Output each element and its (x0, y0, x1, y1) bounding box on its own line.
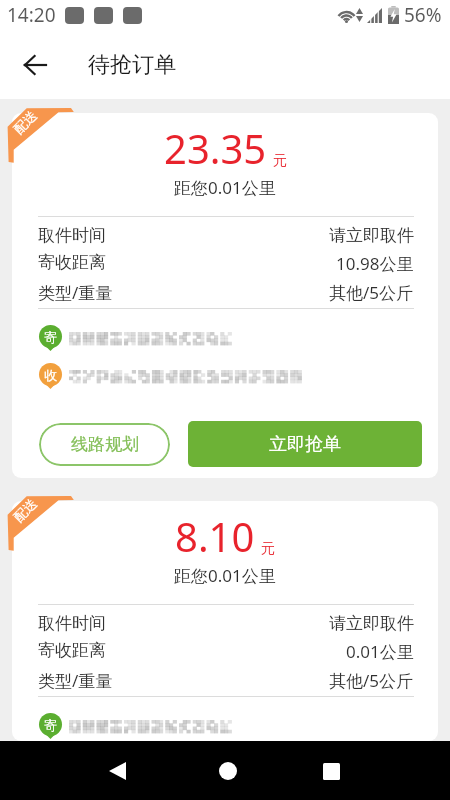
staticText: 寄收距离 (38, 252, 106, 273)
staticText: 配送 (10, 495, 40, 525)
staticText: 配送 (10, 107, 40, 137)
staticText: 距您0.01公里 (174, 564, 276, 587)
button[interactable]: 立即抢单 (188, 421, 422, 467)
staticText: 其他/5公斤 (329, 281, 414, 304)
staticText: 元 (261, 540, 275, 558)
button[interactable]: Back (0, 30, 70, 99)
button[interactable]: 23.35 (12, 113, 438, 478)
staticText: 取件时间 (38, 225, 106, 246)
staticText: 距您0.01公里 (174, 176, 276, 199)
staticText: 寄 (44, 717, 57, 733)
button[interactable]: 线路规划 (39, 423, 170, 466)
staticText: 取件时间 (38, 613, 106, 634)
button[interactable]: Back (91, 745, 143, 797)
staticText: 待抢订单 (88, 51, 176, 79)
staticText: 类型/重量 (38, 281, 113, 304)
staticText: 类型/重量 (38, 669, 113, 692)
staticText: 立即抢单 (269, 433, 341, 456)
button[interactable]: Recents (305, 745, 357, 797)
staticText: 23.35 (164, 121, 267, 175)
staticText: 线路规划 (71, 434, 139, 455)
staticText: 请立即取件 (329, 613, 414, 634)
staticText: 10.98公里 (336, 252, 414, 275)
staticText: 0.01公里 (346, 640, 414, 663)
staticText: 寄 (44, 329, 57, 345)
staticText: 56% (404, 2, 442, 28)
staticText: 14:20 (7, 2, 56, 28)
button[interactable]: 8.10 (12, 501, 438, 741)
staticText: 收 (44, 367, 57, 383)
staticText: 元 (273, 152, 287, 170)
staticText: 请立即取件 (329, 225, 414, 246)
staticText: 寄收距离 (38, 640, 106, 661)
staticText: 8.10 (175, 509, 255, 563)
button[interactable]: Home (202, 745, 254, 797)
staticText: 其他/5公斤 (329, 669, 414, 692)
